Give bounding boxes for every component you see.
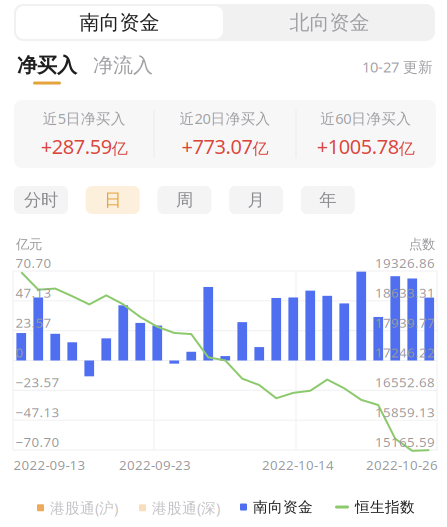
staticText: 年 xyxy=(319,189,336,211)
button[interactable]: 净买入 xyxy=(17,53,77,85)
button[interactable]: 南向资金 xyxy=(16,6,223,39)
staticText: 近60日净买入 xyxy=(320,108,411,128)
staticText: 港股通(沪) xyxy=(50,498,118,517)
staticText: +1005.78 xyxy=(317,133,399,160)
staticText: 70.70 xyxy=(15,254,51,272)
staticText: −70.70 xyxy=(15,433,59,451)
staticText: 10-27 更新 xyxy=(362,57,433,76)
staticText: 18633.31 xyxy=(375,284,435,301)
staticText: 恒生指数 xyxy=(355,498,415,516)
staticText: 分时 xyxy=(24,189,58,211)
staticText: 17246.22 xyxy=(375,343,435,361)
staticText: 南向资金 xyxy=(79,10,159,35)
button[interactable]: 北向资金 xyxy=(226,6,433,39)
staticText: 港股通(深) xyxy=(152,498,220,517)
staticText: 2022-09-23 xyxy=(119,456,191,474)
button[interactable]: 分时 xyxy=(14,186,68,214)
staticText: 周 xyxy=(176,189,193,211)
staticText: −47.13 xyxy=(15,403,59,421)
button[interactable]: 年 xyxy=(301,186,355,214)
staticText: 点数 xyxy=(409,236,435,252)
staticText: 南向资金 xyxy=(253,498,313,516)
button[interactable]: 日 xyxy=(86,186,140,214)
staticText: 17939.77 xyxy=(375,314,435,331)
staticText: 15859.13 xyxy=(375,403,435,421)
staticText: 月 xyxy=(248,189,265,211)
staticText: 近20日净买入 xyxy=(179,108,270,128)
staticText: 23.57 xyxy=(15,314,51,331)
staticText: 2022-10-26 xyxy=(366,456,438,474)
staticText: 2022-10-14 xyxy=(262,456,334,474)
staticText: 近5日净买入 xyxy=(43,108,126,128)
staticText: 2022-09-13 xyxy=(13,456,85,474)
staticText: 净流入 xyxy=(93,53,153,78)
staticText: 47.13 xyxy=(15,284,51,301)
button[interactable]: 月 xyxy=(229,186,283,214)
staticText: 亿元 xyxy=(16,236,42,252)
staticText: 15165.59 xyxy=(375,433,435,451)
button[interactable]: 周 xyxy=(157,186,211,214)
staticText: −23.57 xyxy=(15,373,59,391)
staticText: 亿 xyxy=(252,139,268,158)
staticText: 16552.68 xyxy=(375,373,435,391)
staticText: 亿 xyxy=(112,139,128,158)
staticText: 0 xyxy=(15,343,23,361)
staticText: 北向资金 xyxy=(289,10,369,35)
staticText: 日 xyxy=(104,189,121,211)
staticText: +773.07 xyxy=(181,133,252,160)
button[interactable]: 净流入 xyxy=(93,53,153,78)
staticText: +287.59 xyxy=(41,133,112,160)
staticText: 净买入 xyxy=(17,53,77,78)
staticText: 亿 xyxy=(399,139,415,158)
staticText: 19326.86 xyxy=(375,254,435,272)
